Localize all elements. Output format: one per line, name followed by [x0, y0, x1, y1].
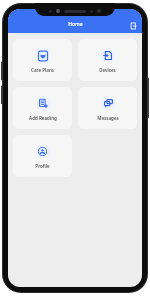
button[interactable]: Devices	[78, 39, 137, 81]
staticText: Home	[68, 21, 83, 28]
staticText: Care Plans	[31, 67, 54, 73]
staticText: Add Reading	[29, 115, 57, 121]
button[interactable]: Profile	[13, 135, 72, 177]
button[interactable]: Messages	[78, 87, 137, 129]
button[interactable]: Care Plans	[13, 39, 72, 81]
button[interactable]: Add Reading	[13, 87, 72, 129]
button[interactable]: Logout	[129, 21, 139, 31]
staticText: Messages	[97, 115, 119, 121]
staticText: Devices	[99, 67, 116, 73]
staticText: Profile	[35, 163, 50, 169]
